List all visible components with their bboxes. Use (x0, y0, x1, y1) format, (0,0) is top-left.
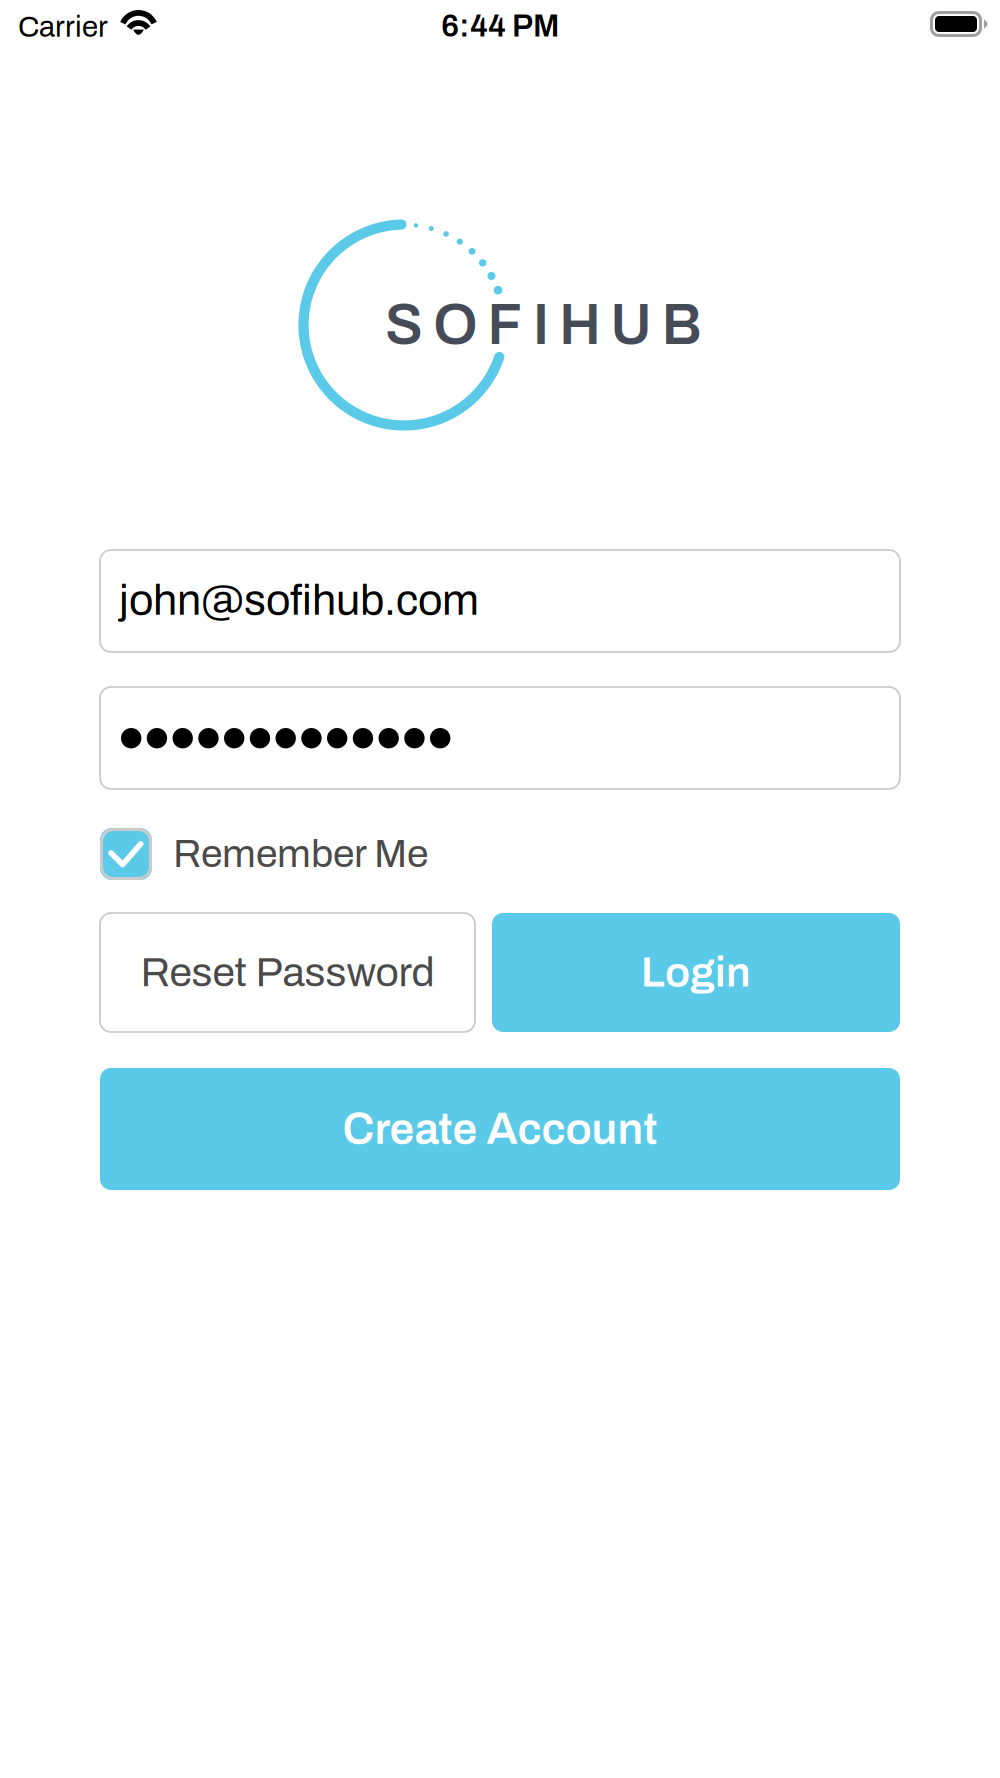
staticText: Remember Me (173, 833, 428, 875)
button[interactable]: Create Account (100, 1068, 900, 1190)
staticText: Login (641, 950, 751, 995)
button[interactable]: Reset Password (100, 913, 475, 1032)
button[interactable]: Login (492, 913, 900, 1032)
staticText: Carrier (18, 11, 108, 43)
staticText: Create Account (342, 1105, 657, 1153)
staticText: SOFIHUB (385, 294, 702, 356)
staticText: john@sofihub.com (119, 577, 479, 624)
staticText: 6:44 PM (441, 9, 559, 43)
button[interactable]: Remember Me (100, 827, 900, 881)
staticText: Reset Password (140, 950, 434, 995)
